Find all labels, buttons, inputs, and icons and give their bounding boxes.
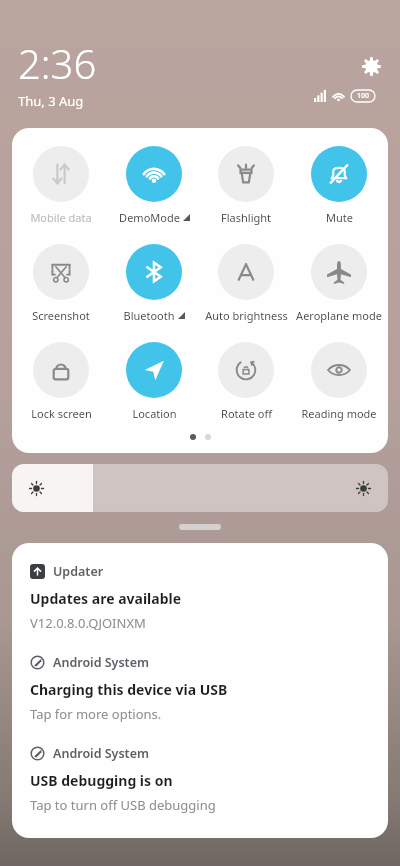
- button[interactable]: Rotate off: [202, 342, 290, 421]
- button[interactable]: Mobile data: [17, 146, 105, 225]
- staticText: Bluetooth: [123, 308, 175, 323]
- staticText: Lock screen: [31, 406, 92, 421]
- staticText: Updates are available: [30, 589, 182, 608]
- staticText: Screenshot: [32, 308, 90, 323]
- button[interactable]: Bluetooth: [110, 244, 198, 323]
- staticText: USB debugging is on: [30, 771, 173, 790]
- staticText: Mobile data: [30, 210, 92, 225]
- button[interactable]: Auto brightness: [202, 244, 290, 323]
- button[interactable]: Aeroplane mode: [295, 244, 383, 323]
- button[interactable]: Updater: [30, 563, 370, 632]
- staticText: Thu, 3 Aug: [18, 92, 84, 110]
- staticText: Android System: [53, 745, 149, 762]
- button[interactable]: DemoMode: [110, 146, 198, 225]
- button[interactable]: Settings: [358, 53, 384, 79]
- staticText: Tap to turn off USB debugging: [30, 796, 216, 814]
- button[interactable]: Location: [110, 342, 198, 421]
- staticText: 2:36: [18, 36, 97, 90]
- button[interactable]: Android System: [30, 745, 370, 814]
- staticText: Tap for more options.: [30, 705, 162, 723]
- button[interactable]: Brightness: [12, 464, 388, 512]
- button[interactable]: Lock screen: [17, 342, 105, 421]
- staticText: Reading mode: [301, 406, 377, 421]
- staticText: Aeroplane mode: [296, 308, 382, 323]
- button[interactable]: Flashlight: [202, 146, 290, 225]
- staticText: Android System: [53, 654, 149, 671]
- staticText: Flashlight: [221, 210, 271, 225]
- staticText: DemoMode: [119, 210, 180, 225]
- button[interactable]: Screenshot: [17, 244, 105, 323]
- staticText: Rotate off: [221, 406, 272, 421]
- staticText: Location: [132, 406, 177, 421]
- button[interactable]: Reading mode: [295, 342, 383, 421]
- staticText: Auto brightness: [205, 308, 288, 323]
- staticText: Charging this device via USB: [30, 680, 228, 699]
- staticText: V12.0.8.0.QJOINXM: [30, 614, 146, 632]
- staticText: Mute: [326, 210, 353, 225]
- staticText: 100: [357, 91, 370, 101]
- staticText: Updater: [53, 563, 104, 580]
- button[interactable]: Android System: [30, 654, 370, 723]
- button[interactable]: Mute: [295, 146, 383, 225]
